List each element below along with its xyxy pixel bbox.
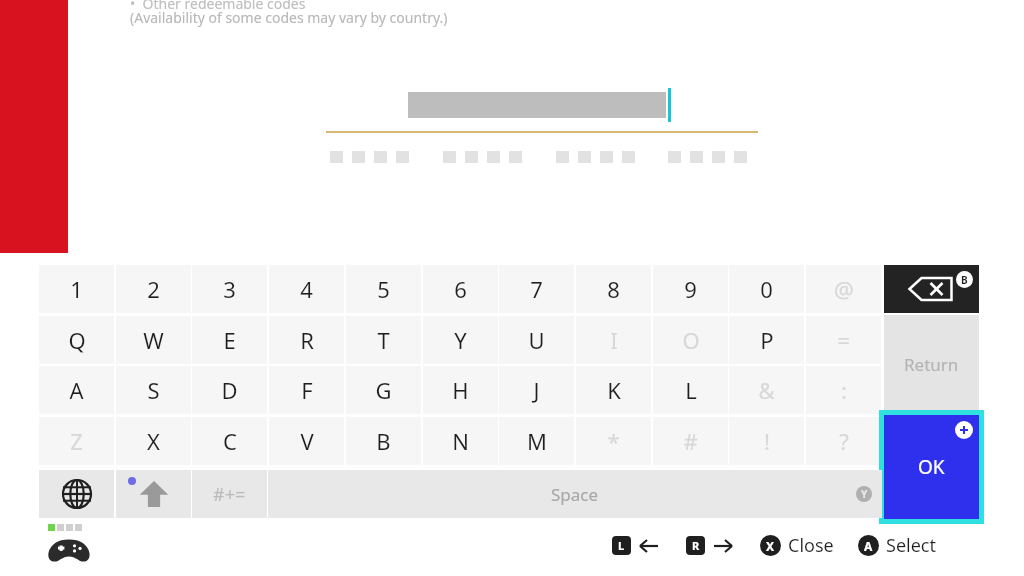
button[interactable]: 9: [653, 265, 728, 313]
button[interactable]: 3: [192, 265, 267, 313]
button[interactable]: K: [576, 366, 651, 414]
staticText: =: [837, 325, 850, 355]
staticText: O: [682, 325, 700, 355]
button[interactable]: A: [39, 366, 114, 414]
button[interactable]: T: [346, 316, 421, 364]
staticText: 6: [454, 274, 467, 304]
staticText: J: [533, 375, 540, 405]
button[interactable]: Return: [884, 315, 979, 413]
staticText: 5: [377, 274, 390, 304]
button[interactable]: B: [346, 417, 421, 465]
staticText: (Availability of some codes may vary by …: [130, 8, 448, 27]
button[interactable]: H: [423, 366, 498, 414]
button[interactable]: Z: [39, 417, 114, 465]
staticText: N: [452, 426, 469, 456]
button[interactable]: @: [806, 265, 881, 313]
staticText: W: [143, 325, 164, 355]
staticText: 4: [300, 274, 313, 304]
button[interactable]: Q: [39, 316, 114, 364]
staticText: ?: [839, 426, 849, 456]
staticText: #+=: [213, 482, 246, 507]
button[interactable]: I: [576, 316, 651, 364]
staticText: 2: [147, 274, 160, 304]
button[interactable]: 2: [116, 265, 191, 313]
staticText: Y: [454, 325, 467, 355]
button[interactable]: E: [192, 316, 267, 364]
button[interactable]: 6: [423, 265, 498, 313]
staticText: D: [221, 375, 238, 405]
button[interactable]: 7: [499, 265, 574, 313]
button[interactable]: X: [116, 417, 191, 465]
button[interactable]: P: [729, 316, 804, 364]
button[interactable]: :: [806, 366, 881, 414]
staticText: Return: [904, 353, 959, 376]
staticText: B: [376, 426, 391, 456]
staticText: L: [618, 538, 625, 553]
button[interactable]: D: [192, 366, 267, 414]
button[interactable]: 1: [39, 265, 114, 313]
button[interactable]: ?: [806, 417, 881, 465]
staticText: *: [607, 426, 620, 456]
staticText: X: [147, 426, 160, 456]
button[interactable]: OK: [884, 415, 979, 519]
staticText: V: [300, 426, 314, 456]
button[interactable]: Space: [268, 470, 882, 518]
staticText: 3: [223, 274, 236, 304]
button[interactable]: 5: [346, 265, 421, 313]
staticText: L: [685, 375, 697, 405]
button[interactable]: Change language: [39, 470, 114, 518]
button[interactable]: J: [499, 366, 574, 414]
button[interactable]: S: [116, 366, 191, 414]
button[interactable]: Y: [423, 316, 498, 364]
staticText: B: [961, 273, 968, 287]
button[interactable]: N: [423, 417, 498, 465]
staticText: 8: [607, 274, 620, 304]
staticText: Space: [551, 483, 599, 506]
staticText: P: [760, 325, 774, 355]
button[interactable]: 8: [576, 265, 651, 313]
button[interactable]: 4: [269, 265, 344, 313]
button[interactable]: W: [116, 316, 191, 364]
button[interactable]: A: [858, 533, 936, 558]
staticText: S: [147, 375, 160, 405]
button[interactable]: G: [346, 366, 421, 414]
staticText: G: [375, 375, 392, 405]
staticText: R: [692, 538, 700, 553]
button[interactable]: #: [653, 417, 728, 465]
button[interactable]: O: [653, 316, 728, 364]
staticText: Select: [886, 533, 936, 558]
staticText: :: [841, 375, 847, 405]
button[interactable]: V: [269, 417, 344, 465]
staticText: @: [834, 274, 854, 304]
button[interactable]: C: [192, 417, 267, 465]
button[interactable]: Backspace: [884, 265, 979, 313]
staticText: • Other redeemable codes: [130, 0, 306, 13]
button[interactable]: L: [653, 366, 728, 414]
staticText: A: [864, 538, 873, 554]
staticText: U: [528, 325, 545, 355]
staticText: Q: [68, 325, 86, 355]
staticText: OK: [918, 454, 945, 480]
button[interactable]: R: [269, 316, 344, 364]
button[interactable]: U: [499, 316, 574, 364]
staticText: 0: [760, 274, 773, 304]
staticText: Y: [861, 487, 868, 501]
button[interactable]: M: [499, 417, 574, 465]
button[interactable]: *: [576, 417, 651, 465]
button[interactable]: &: [729, 366, 804, 414]
button[interactable]: Shift: [116, 470, 191, 518]
staticText: #: [683, 426, 698, 456]
staticText: F: [301, 375, 313, 405]
staticText: Close: [788, 533, 834, 558]
staticText: 9: [684, 274, 697, 304]
button[interactable]: #+=: [192, 470, 267, 518]
button[interactable]: F: [269, 366, 344, 414]
staticText: R: [300, 325, 314, 355]
button[interactable]: X: [760, 533, 834, 558]
button[interactable]: 0: [729, 265, 804, 313]
staticText: 1: [70, 274, 83, 304]
staticText: !: [764, 426, 770, 456]
staticText: Z: [70, 426, 83, 456]
